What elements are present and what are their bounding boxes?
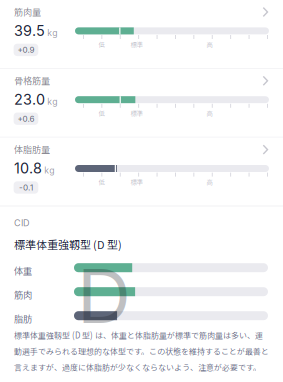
staticText: 39.5 <box>14 22 45 39</box>
staticText: -0.1 <box>19 183 33 192</box>
staticText: 体脂肪量 <box>14 142 50 156</box>
staticText: +0.9 <box>17 45 34 55</box>
staticText: 標準 <box>130 40 142 49</box>
staticText: 高 <box>206 108 212 118</box>
staticText: 体重 <box>14 264 32 277</box>
staticText: D <box>77 251 131 341</box>
staticText: 標準 <box>130 177 142 186</box>
staticText: 標準体重強靱型 (D 型) は、体重と体脂肪量が標準で筋肉量は多い、運動選手でみ… <box>14 329 269 373</box>
staticText: kg <box>44 165 54 176</box>
staticText: 標準体重強靱型 (D 型) <box>14 236 122 252</box>
button[interactable]: 筋肉量 <box>0 0 283 68</box>
staticText: 高 <box>206 177 212 186</box>
staticText: CID <box>14 217 30 228</box>
staticText: 高 <box>206 40 212 49</box>
staticText: 23.0 <box>14 91 45 108</box>
staticText: 筋肉 <box>14 288 32 301</box>
staticText: 骨格筋量 <box>14 74 50 87</box>
staticText: 標準 <box>130 108 142 118</box>
staticText: 低 <box>98 177 104 186</box>
staticText: 筋肉量 <box>14 5 41 18</box>
staticText: 低 <box>98 108 104 118</box>
button[interactable]: 骨格筋量 <box>0 69 283 137</box>
button[interactable]: 体脂肪量 <box>0 138 283 206</box>
staticText: 脂肪 <box>14 312 32 325</box>
staticText: kg <box>47 28 57 38</box>
staticText: 10.8 <box>14 160 42 177</box>
staticText: kg <box>47 96 57 107</box>
staticText: 低 <box>98 40 104 49</box>
staticText: +0.6 <box>17 114 34 124</box>
